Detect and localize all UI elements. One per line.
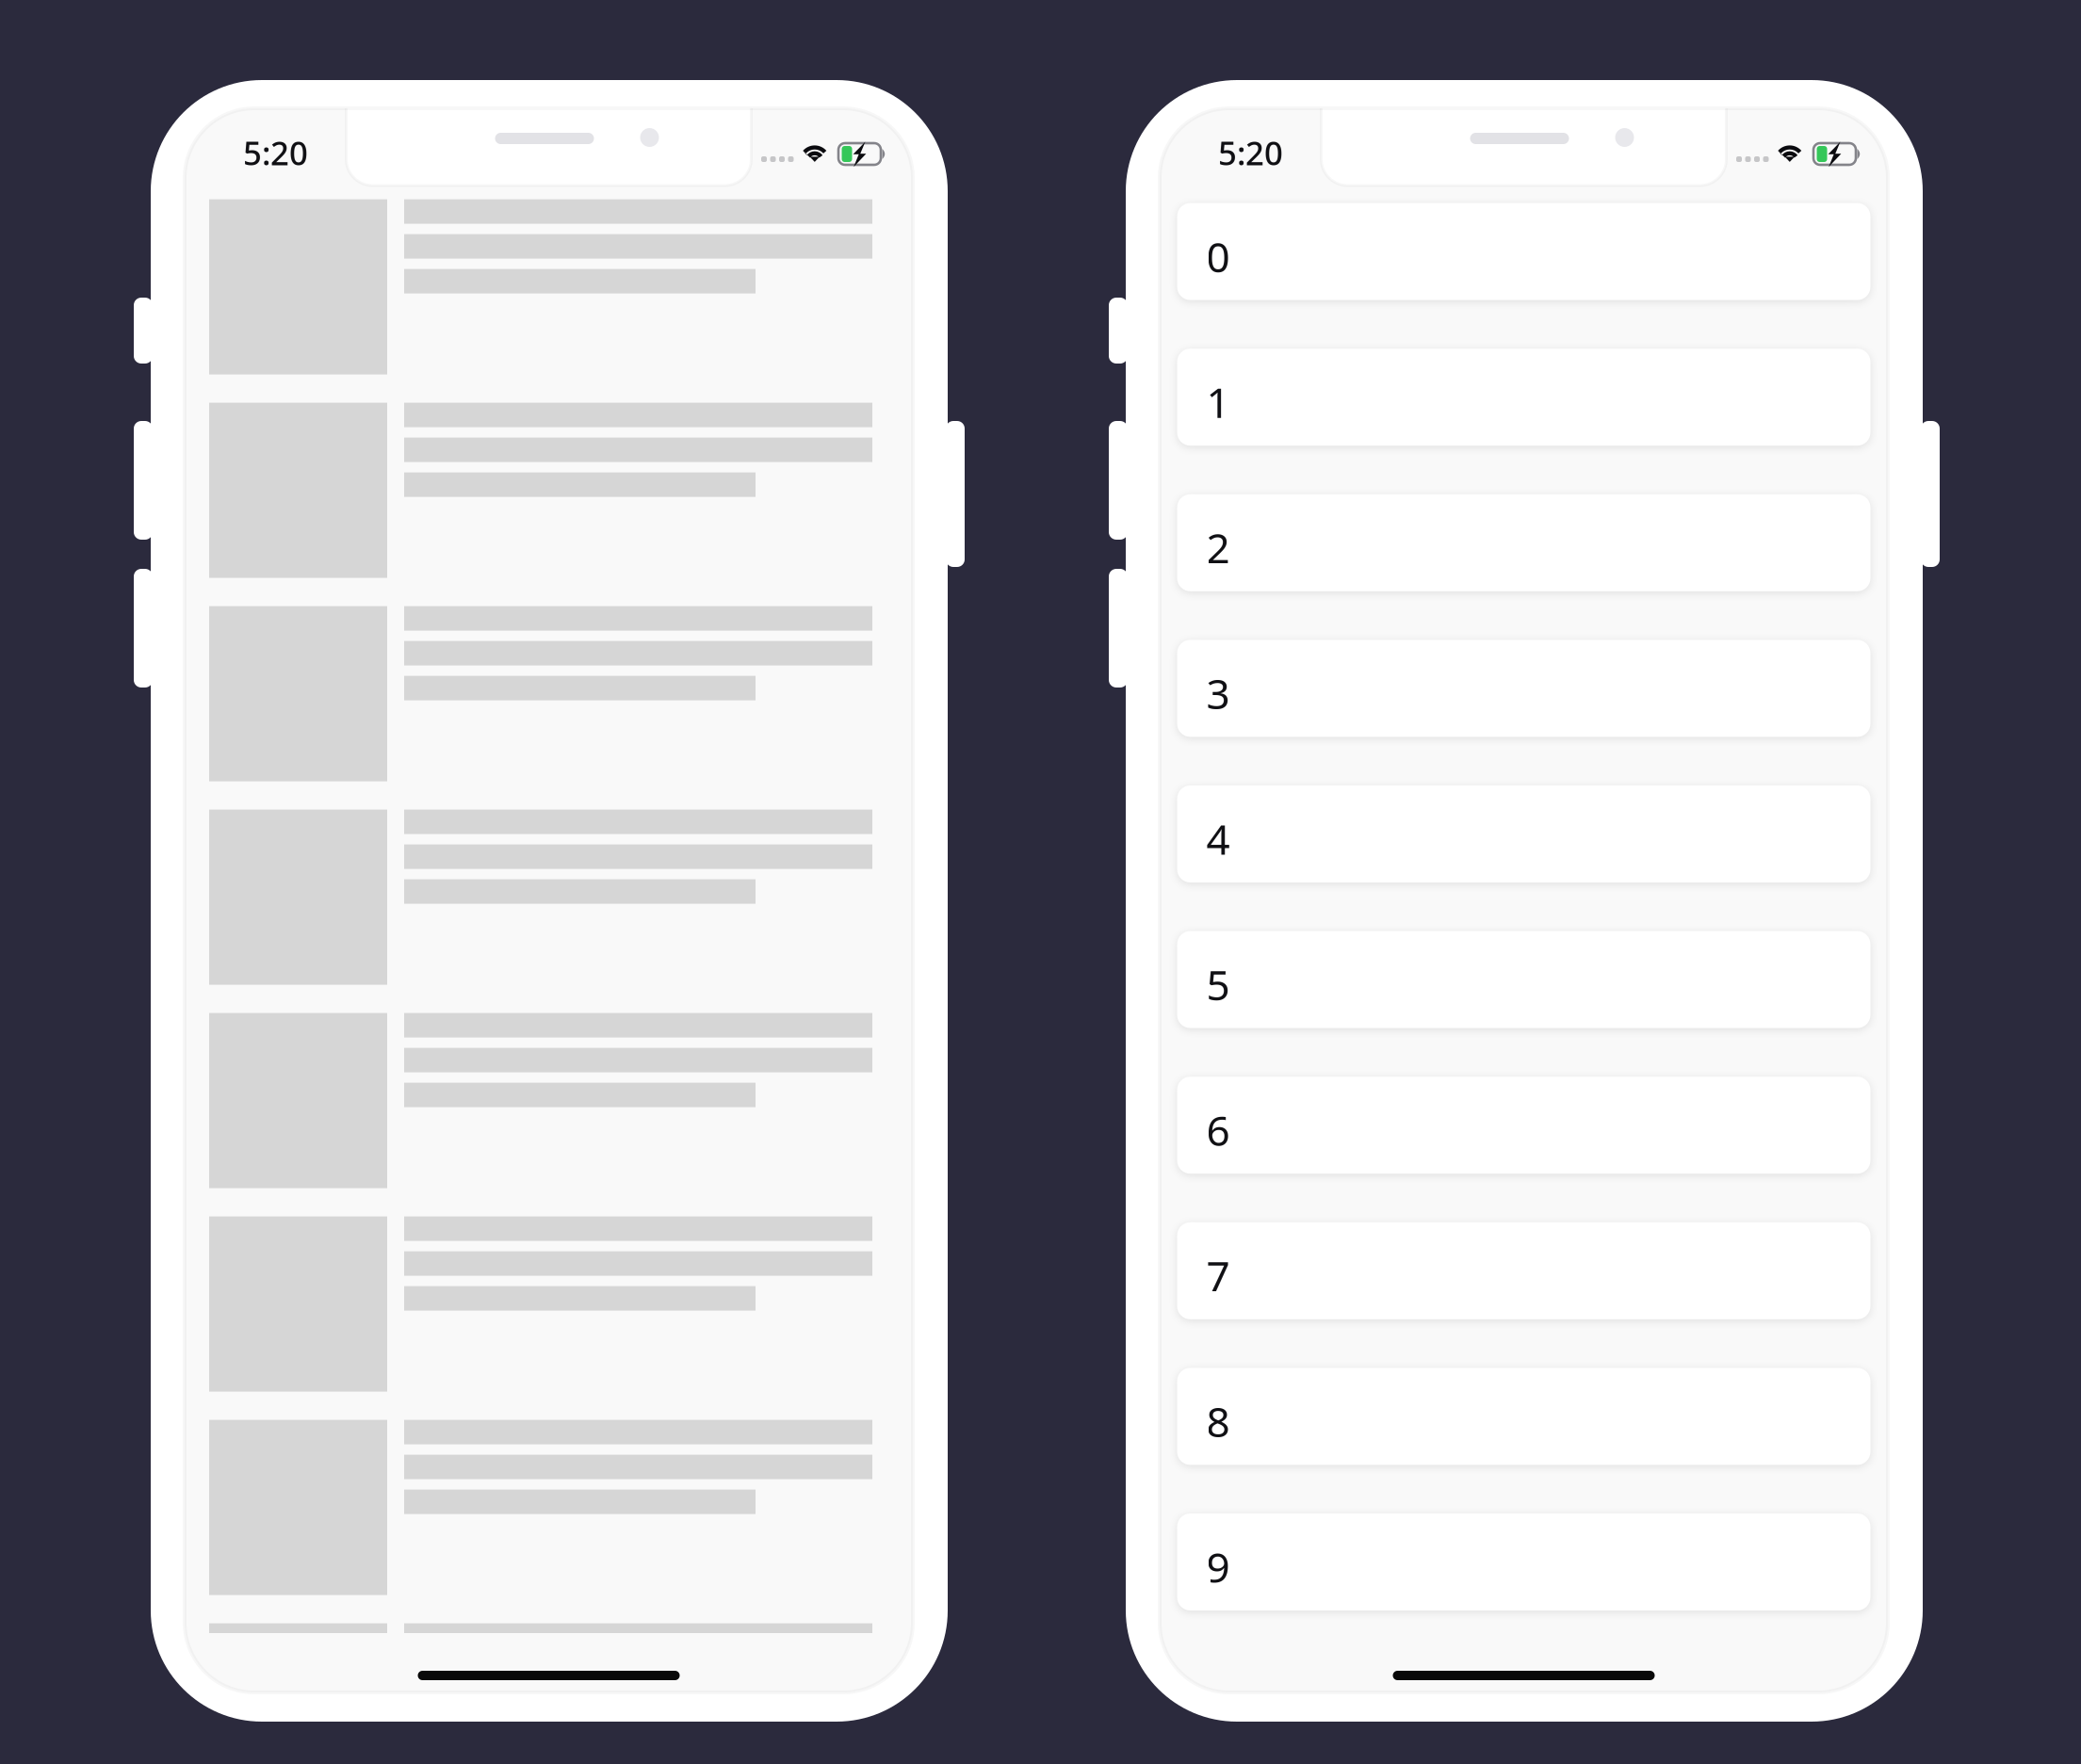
button[interactable]: 1 bbox=[1177, 349, 1870, 446]
staticText: 5:20 bbox=[243, 131, 308, 174]
button[interactable]: 9 bbox=[1177, 1513, 1870, 1610]
button[interactable]: 5 bbox=[1177, 931, 1870, 1028]
staticText: 0 bbox=[1206, 229, 1230, 284]
staticText: 4 bbox=[1206, 811, 1230, 866]
button[interactable]: 3 bbox=[1177, 640, 1870, 737]
staticText: 1 bbox=[1206, 374, 1230, 429]
button[interactable]: 2 bbox=[1177, 494, 1870, 591]
button[interactable]: 0 bbox=[1177, 203, 1870, 300]
staticText: 5 bbox=[1206, 957, 1230, 1012]
button[interactable]: 7 bbox=[1177, 1222, 1870, 1319]
button[interactable]: 4 bbox=[1177, 785, 1870, 882]
staticText: 6 bbox=[1206, 1102, 1230, 1157]
staticText: 5:20 bbox=[1218, 131, 1283, 174]
staticText: 8 bbox=[1206, 1394, 1230, 1449]
staticText: 9 bbox=[1206, 1539, 1230, 1594]
staticText: 3 bbox=[1206, 666, 1230, 721]
staticText: 7 bbox=[1206, 1248, 1230, 1303]
button[interactable]: 8 bbox=[1177, 1368, 1870, 1465]
button[interactable]: 6 bbox=[1177, 1077, 1870, 1174]
staticText: 2 bbox=[1206, 520, 1230, 575]
